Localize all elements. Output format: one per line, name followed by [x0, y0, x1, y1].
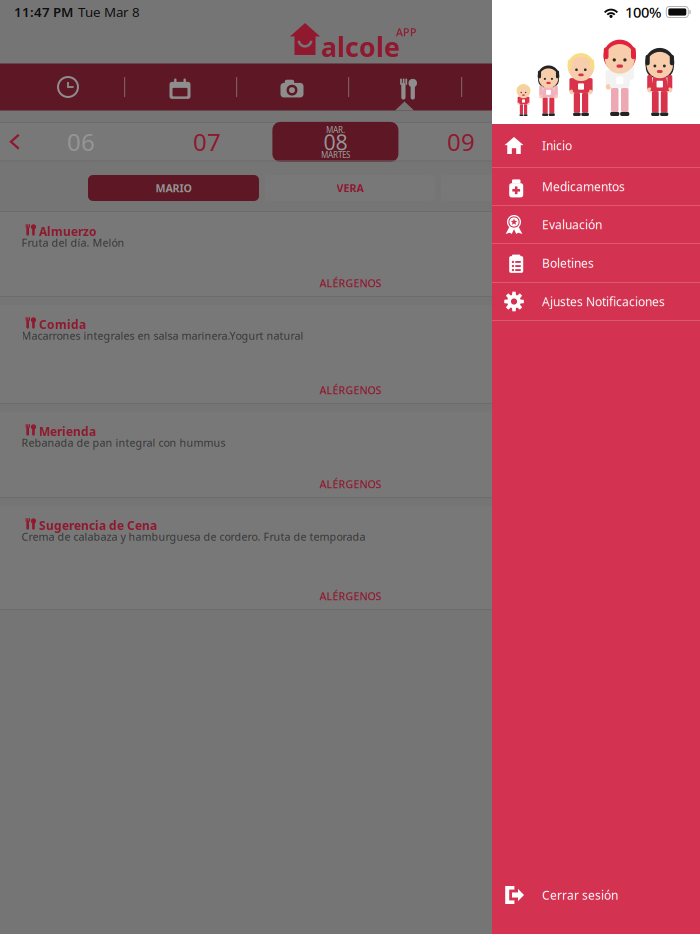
staticText: VERA — [336, 181, 363, 195]
staticText: Crema de calabaza y hamburguesa de corde… — [21, 529, 365, 544]
staticText: Ajustes Notificaciones — [542, 293, 665, 309]
button[interactable]: Boletines — [492, 244, 700, 282]
button[interactable]: Inicio — [492, 124, 700, 167]
staticText: 11:47 PM — [14, 3, 73, 21]
staticText: alcole — [321, 29, 400, 64]
staticText: 09 — [447, 126, 475, 158]
button[interactable]: Horario — [40, 63, 96, 110]
staticText: ALÉRGENOS — [319, 589, 381, 603]
staticText: Boletines — [542, 255, 594, 271]
staticText: Inicio — [542, 137, 572, 153]
staticText: 08 — [323, 128, 347, 156]
button[interactable]: Fotos — [264, 63, 320, 110]
button[interactable]: ALÉRGENOS — [302, 380, 398, 400]
button[interactable]: VERA — [265, 175, 435, 201]
staticText: Macarrones integrales en salsa marinera.… — [21, 328, 303, 343]
button[interactable]: MAR. — [272, 122, 398, 162]
staticText: Merienda — [39, 423, 96, 439]
staticText: ALÉRGENOS — [319, 383, 381, 397]
staticText: Cerrar sesión — [542, 887, 618, 903]
button[interactable]: Medicamentos — [492, 168, 700, 205]
button[interactable]: MARIO — [88, 175, 259, 201]
staticText: 100% — [625, 2, 661, 22]
staticText: MAR. — [326, 125, 345, 135]
staticText: Fruta del día. Melón — [21, 235, 124, 250]
staticText: Medicamentos — [542, 178, 625, 194]
staticText: 06 — [67, 126, 95, 158]
button[interactable]: ALÉRGENOS — [302, 586, 398, 606]
button[interactable]: Menú — [376, 63, 432, 110]
button[interactable]: Calendario — [152, 63, 208, 110]
button[interactable]: 09 — [425, 123, 497, 160]
button[interactable]: ALÉRGENOS — [302, 474, 398, 494]
button[interactable]: Otro alumno — [441, 175, 521, 201]
button[interactable]: Cerrar sesión — [492, 867, 700, 923]
button[interactable]: Evaluación — [492, 206, 700, 243]
staticText: Evaluación — [542, 216, 602, 232]
staticText: ALÉRGENOS — [319, 477, 381, 491]
staticText: Sugerencia de Cena — [39, 517, 157, 533]
button[interactable]: Ajustes Notificaciones — [492, 283, 700, 320]
staticText: 07 — [193, 126, 221, 158]
staticText: Almuerzo — [39, 223, 97, 239]
button[interactable]: Semana anterior — [0, 123, 30, 160]
button[interactable]: 06 — [45, 123, 117, 160]
staticText: MARIO — [155, 181, 191, 195]
staticText: APP — [396, 25, 417, 39]
staticText: Comida — [39, 316, 86, 332]
staticText: MARTES — [321, 150, 350, 160]
staticText: Rebanada de pan integral con hummus — [21, 435, 225, 450]
staticText: ALÉRGENOS — [319, 276, 381, 290]
staticText: Tue Mar 8 — [78, 3, 140, 21]
button[interactable]: ALÉRGENOS — [302, 273, 398, 293]
button[interactable]: 07 — [171, 123, 243, 160]
